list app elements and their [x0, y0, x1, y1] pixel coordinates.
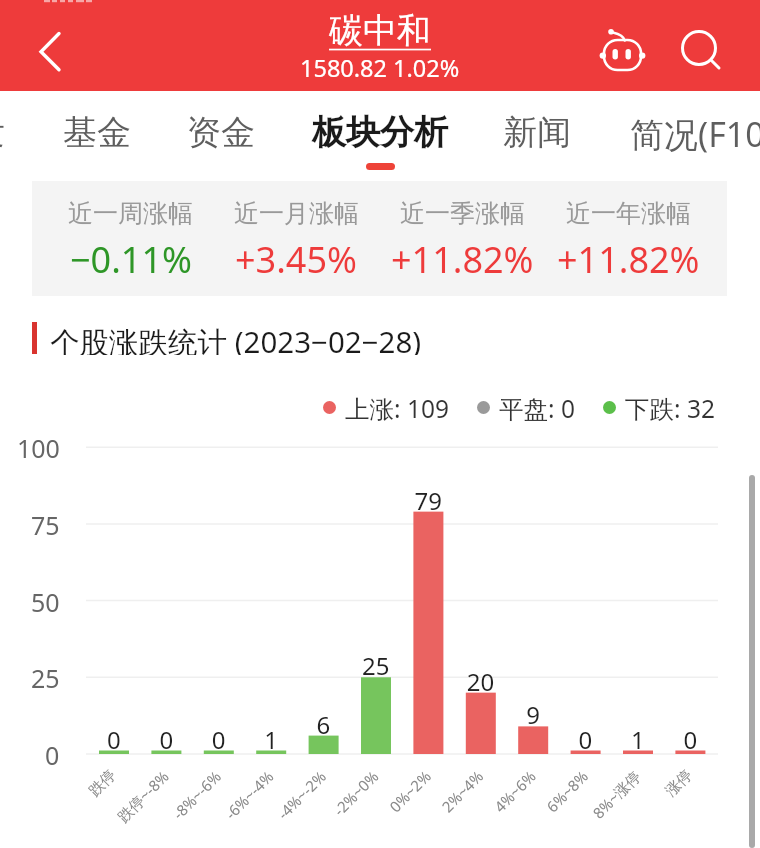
button[interactable]: Search	[675, 24, 727, 76]
staticText: 近一月涨幅	[234, 198, 359, 229]
button[interactable]: 基金	[7, 91, 187, 171]
staticText: 简况(F10	[630, 111, 760, 157]
button[interactable]: 资金	[131, 91, 311, 171]
staticText: 平盘: 0	[499, 392, 575, 422]
button[interactable]: 发	[0, 91, 78, 171]
staticText: 上涨: 109	[345, 392, 449, 422]
staticText: 近一年涨幅	[566, 198, 691, 229]
staticText: +11.82%	[557, 235, 700, 284]
button[interactable]: 上涨: 109	[323, 392, 449, 422]
staticText: 近一周涨幅	[68, 198, 193, 229]
button[interactable]: AI assistant	[594, 23, 650, 79]
staticText: 个股涨跌统计 (2023−02−28)	[50, 321, 422, 355]
staticText: 发	[0, 111, 5, 154]
button[interactable]: 下跌: 32	[603, 392, 715, 422]
button[interactable]: Back	[18, 20, 80, 82]
staticText: +3.45%	[235, 235, 357, 284]
staticText: +11.82%	[391, 235, 534, 284]
staticText: 资金	[187, 111, 255, 154]
staticText: −0.11%	[70, 235, 192, 284]
staticText: 1580.82 1.02%	[300, 52, 460, 84]
staticText: 下跌: 32	[625, 392, 715, 422]
button[interactable]: 板块分析	[290, 91, 470, 171]
staticText: 板块分析	[312, 111, 448, 154]
button[interactable]: 简况(F10	[607, 91, 760, 171]
button[interactable]: 平盘: 0	[477, 392, 575, 422]
staticText: 基金	[63, 111, 131, 154]
button[interactable]: 新闻	[447, 91, 627, 171]
staticText: 近一季涨幅	[400, 198, 525, 229]
staticText: 新闻	[503, 111, 571, 154]
staticText: 碳中和	[329, 9, 431, 52]
